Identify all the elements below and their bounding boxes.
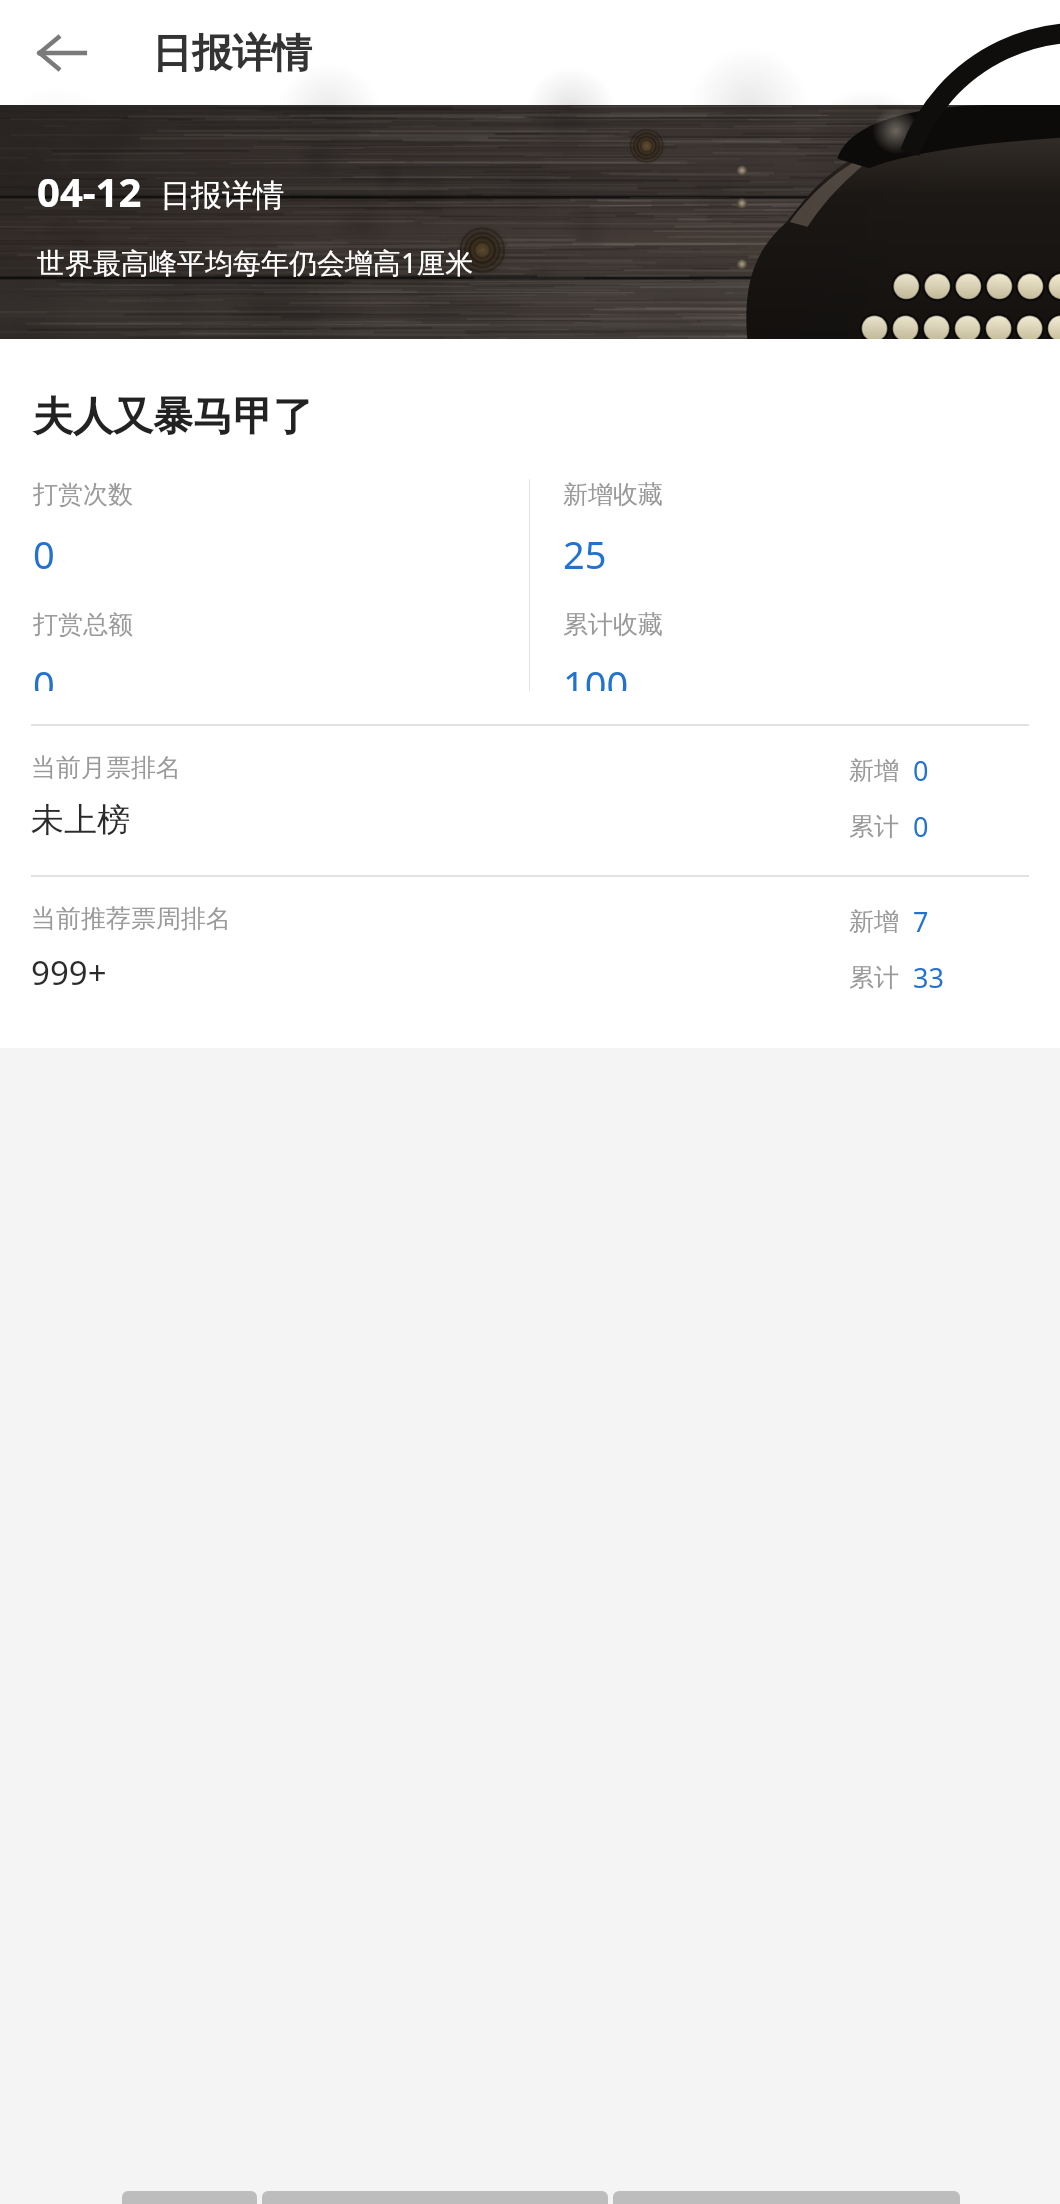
- button[interactable]: Back: [613, 2191, 960, 2204]
- staticText: 新增: [849, 906, 899, 937]
- staticText: 新增: [849, 755, 899, 786]
- staticText: 7: [913, 903, 929, 940]
- button[interactable]: 当前月票排名: [31, 726, 1029, 875]
- staticText: 新增收藏: [563, 479, 663, 510]
- button[interactable]: Back: [14, 5, 110, 101]
- staticText: 04-12: [37, 164, 142, 218]
- staticText: 世界最高峰平均每年仍会增高1厘米: [37, 243, 474, 281]
- staticText: 100: [563, 658, 629, 691]
- staticText: 0: [33, 658, 55, 691]
- staticText: 999+: [31, 950, 107, 995]
- staticText: 日报详情: [160, 176, 284, 215]
- staticText: 夫人又暴马甲了: [33, 391, 313, 441]
- staticText: 累计: [849, 811, 899, 842]
- staticText: 日报详情: [152, 28, 312, 78]
- staticText: 当前月票排名: [31, 752, 181, 783]
- staticText: 0: [33, 528, 55, 580]
- staticText: 打赏总额: [33, 609, 133, 640]
- staticText: 未上榜: [31, 799, 130, 841]
- staticText: 0: [913, 752, 929, 789]
- staticText: 打赏次数: [33, 479, 133, 510]
- staticText: 累计: [849, 962, 899, 993]
- staticText: 当前推荐票周排名: [31, 903, 231, 934]
- button[interactable]: Home: [262, 2191, 608, 2204]
- staticText: 25: [563, 528, 607, 580]
- button[interactable]: 当前推荐票周排名: [31, 877, 1029, 1026]
- staticText: 33: [913, 959, 944, 996]
- staticText: 0: [913, 808, 929, 845]
- button[interactable]: Recents: [122, 2191, 257, 2204]
- staticText: 累计收藏: [563, 609, 663, 640]
